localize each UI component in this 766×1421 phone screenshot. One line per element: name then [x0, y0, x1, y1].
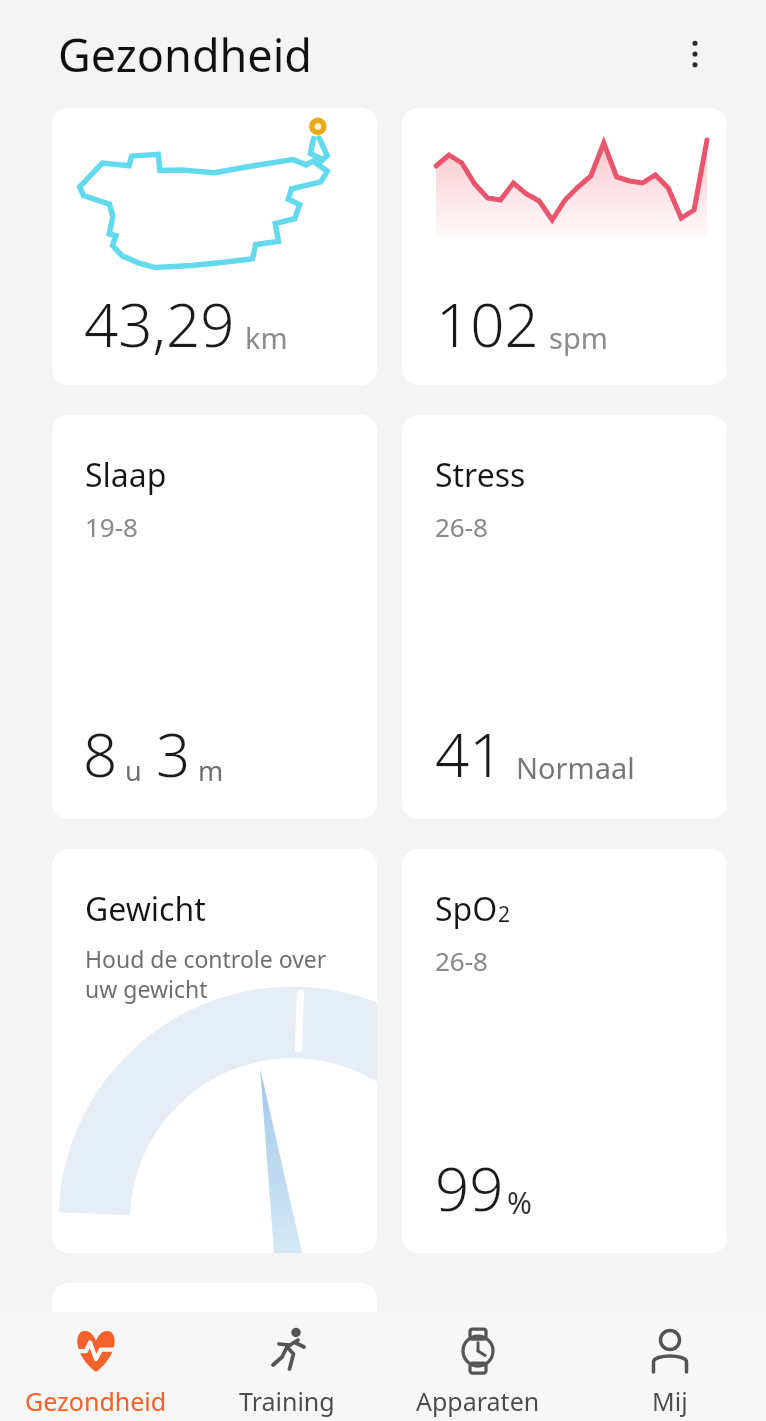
- button[interactable]: Hartslag: [402, 108, 727, 385]
- staticText: 2: [498, 900, 511, 929]
- button[interactable]: Training: [191, 1312, 382, 1421]
- staticText: Normaal: [516, 748, 635, 787]
- button[interactable]: Slaap: [52, 415, 377, 819]
- staticText: 26-8: [435, 509, 488, 544]
- staticText: 43,29: [84, 283, 235, 365]
- staticText: Slaap: [85, 453, 167, 497]
- staticText: Gezondheid: [25, 1384, 167, 1418]
- staticText: m: [198, 752, 224, 789]
- staticText: Houd de controle over uw gewicht: [85, 943, 353, 1004]
- button[interactable]: Stress: [402, 415, 727, 819]
- staticText: 102: [436, 283, 539, 365]
- staticText: SpO: [435, 887, 498, 931]
- button[interactable]: Afstand: [52, 108, 377, 385]
- staticText: %: [507, 1182, 532, 1223]
- button[interactable]: SpO2: [402, 849, 727, 1253]
- staticText: Mij: [652, 1384, 688, 1418]
- staticText: 26-8: [435, 943, 488, 978]
- staticText: 19-8: [85, 509, 138, 544]
- staticText: 3: [156, 713, 191, 795]
- staticText: Training: [239, 1384, 335, 1418]
- staticText: u: [125, 752, 142, 789]
- button[interactable]: Meer opties: [668, 27, 722, 81]
- button[interactable]: Meer: [52, 1283, 377, 1403]
- button[interactable]: Apparaten: [382, 1312, 574, 1421]
- staticText: 99: [435, 1147, 504, 1229]
- button[interactable]: Gewicht: [52, 849, 377, 1253]
- button[interactable]: Mij: [574, 1312, 766, 1421]
- staticText: 8: [83, 713, 118, 795]
- staticText: Gezondheid: [58, 24, 313, 85]
- button[interactable]: Gezondheid: [0, 1312, 191, 1421]
- staticText: spm: [549, 318, 608, 357]
- staticText: km: [245, 318, 288, 357]
- staticText: 41: [435, 713, 504, 795]
- staticText: Gewicht: [85, 887, 206, 931]
- staticText: Stress: [435, 453, 526, 497]
- staticText: Apparaten: [416, 1384, 540, 1418]
